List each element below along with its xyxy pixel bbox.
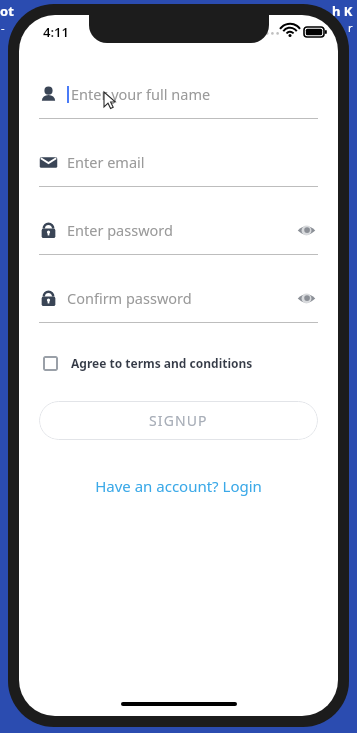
button[interactable]: Password [39, 215, 318, 255]
button[interactable]: Show password [294, 286, 318, 310]
button[interactable]: Show password [294, 218, 318, 242]
staticText: Enter password [67, 220, 173, 240]
button[interactable]: SIGNUP [39, 401, 318, 440]
other: Password [39, 221, 58, 240]
staticText: r [348, 20, 353, 35]
staticText: h K [332, 2, 353, 20]
staticText: Have an account? Login [95, 476, 262, 496]
button[interactable]: Email [39, 147, 318, 187]
button[interactable]: Confirm password [39, 283, 318, 323]
staticText: Enter your full name [71, 84, 211, 104]
staticText: SIGNUP [149, 411, 208, 430]
button[interactable]: Have an account? Login [39, 470, 318, 502]
staticText: 4:11 [43, 23, 69, 41]
staticText: - [1, 20, 5, 35]
other: Full name [39, 85, 58, 104]
staticText: Confirm password [67, 288, 192, 308]
staticText: ot [0, 2, 14, 20]
other: Email [39, 153, 58, 172]
button[interactable]: Full name [39, 79, 318, 119]
staticText: Agree to terms and conditions [71, 355, 253, 371]
staticText: Enter email [67, 152, 145, 172]
other: Confirm password [39, 289, 58, 308]
button[interactable]: Agree to terms and conditions [41, 349, 255, 377]
